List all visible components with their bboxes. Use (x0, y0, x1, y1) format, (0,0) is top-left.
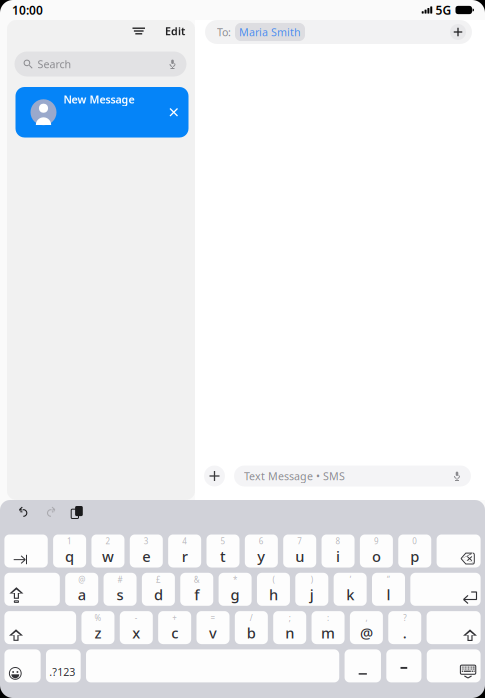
staticText: w (102, 547, 114, 566)
staticText: # (118, 574, 123, 585)
button[interactable]: Text Message • SMS (234, 465, 471, 486)
button[interactable]: Tab (4, 534, 48, 567)
staticText: Maria Smith (239, 25, 301, 39)
button[interactable]: Paste (65, 501, 88, 524)
button[interactable]: 0 (398, 534, 431, 567)
button[interactable]: Emoji (4, 649, 41, 682)
staticText: f (194, 585, 199, 604)
staticText: t (220, 547, 226, 566)
staticText: Text Message • SMS (244, 469, 345, 483)
staticText: £ (156, 574, 161, 585)
staticText: : (327, 612, 329, 623)
staticText: c (171, 623, 178, 643)
button[interactable]: Caps Lock (4, 573, 60, 606)
button[interactable]: Edit (160, 20, 190, 42)
staticText: p (410, 547, 419, 566)
staticText: ’ (350, 574, 351, 585)
button[interactable]: ) (295, 573, 328, 606)
staticText: = (210, 612, 215, 623)
staticText: h (269, 585, 278, 604)
staticText: j (310, 585, 314, 604)
button[interactable]: , (350, 611, 383, 644)
button[interactable]: ( (257, 573, 290, 606)
button[interactable]: Add Contact (450, 24, 466, 40)
button[interactable]: Delete (437, 534, 481, 567)
button[interactable]: * (219, 573, 252, 606)
staticText: ; (289, 612, 291, 623)
staticText: d (154, 585, 163, 604)
button[interactable]: & (180, 573, 213, 606)
button[interactable]: / (235, 611, 268, 644)
staticText: @ (360, 623, 373, 643)
staticText: ( (272, 574, 274, 585)
staticText: 4 (182, 536, 187, 546)
button[interactable]: Hyphen (386, 649, 421, 682)
staticText: ) (311, 574, 313, 585)
button[interactable]: Shift (4, 611, 76, 644)
button[interactable]: ? (388, 611, 421, 644)
button[interactable]: Maria Smith (235, 23, 305, 41)
staticText: .?123 (49, 665, 75, 679)
staticText: b (247, 623, 256, 643)
staticText: z (94, 623, 101, 643)
button[interactable]: - (120, 611, 153, 644)
button[interactable]: Dismiss (165, 103, 182, 121)
staticText: * (233, 574, 237, 585)
button[interactable]: Shift (427, 611, 481, 644)
button[interactable]: 9 (360, 534, 393, 567)
button[interactable]: Redo (41, 503, 61, 522)
button[interactable]: Return (410, 573, 481, 606)
button[interactable]: New Message (15, 87, 188, 137)
button[interactable]: 2 (91, 534, 124, 567)
button[interactable]: Underscore (345, 649, 381, 682)
staticText: . (403, 623, 407, 643)
button[interactable] (86, 649, 339, 682)
button[interactable]: = (196, 611, 229, 644)
button[interactable]: % (81, 611, 114, 644)
staticText: g (231, 585, 240, 604)
button[interactable]: 3 (130, 534, 163, 567)
button[interactable]: 4 (168, 534, 201, 567)
staticText: 3 (144, 536, 149, 546)
staticText: e (142, 547, 150, 566)
button[interactable]: 8 (322, 534, 355, 567)
staticText: 0 (412, 536, 417, 546)
button[interactable]: Search (14, 51, 186, 76)
button[interactable]: # (104, 573, 137, 606)
staticText: ? (403, 612, 406, 623)
staticText: Edit (165, 24, 185, 38)
button[interactable]: + (158, 611, 191, 644)
staticText: 9 (374, 536, 379, 546)
button[interactable]: 1 (53, 534, 86, 567)
button[interactable]: Filter conversations (125, 22, 152, 40)
button[interactable]: 6 (245, 534, 278, 567)
staticText: , (365, 612, 367, 623)
button[interactable]: £ (142, 573, 175, 606)
button[interactable]: 7 (283, 534, 316, 567)
button[interactable]: 5 (206, 534, 239, 567)
staticText: q (65, 547, 74, 566)
button[interactable]: Undo (13, 503, 33, 522)
staticText: a (78, 585, 86, 604)
staticText: x (132, 623, 140, 643)
staticText: To: (217, 25, 231, 39)
button[interactable]: ” (372, 573, 405, 606)
button[interactable]: Hide Keyboard (427, 649, 481, 682)
staticText: 2 (105, 536, 110, 546)
staticText: @ (78, 574, 85, 585)
staticText: / (250, 612, 253, 623)
button[interactable]: Add Attachment (204, 465, 225, 486)
staticText: Search (37, 57, 71, 71)
staticText: l (386, 585, 390, 604)
staticText: r (182, 547, 188, 566)
button[interactable]: : (312, 611, 345, 644)
button[interactable]: @ (65, 573, 98, 606)
button[interactable]: ’ (334, 573, 367, 606)
staticText: - (135, 612, 138, 623)
staticText: i (336, 547, 340, 566)
button[interactable]: ; (273, 611, 306, 644)
staticText: New Message (63, 92, 134, 106)
button[interactable]: .?123 (46, 649, 81, 682)
staticText: s (117, 585, 124, 604)
staticText: 8 (336, 536, 341, 546)
